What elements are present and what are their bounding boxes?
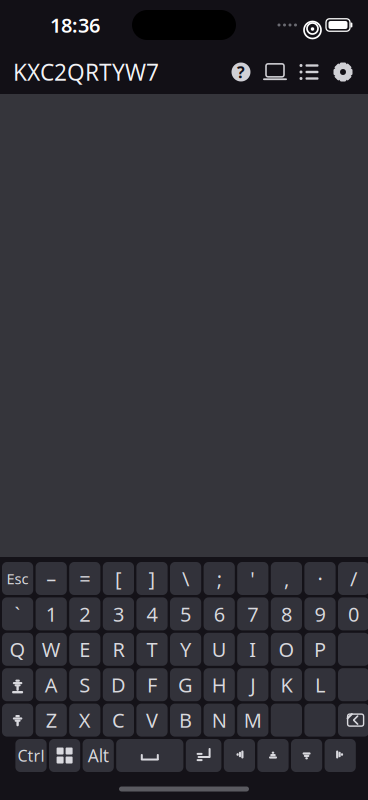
staticText: U bbox=[212, 636, 227, 663]
staticText: 2 bbox=[79, 601, 90, 627]
staticText: 18:36 bbox=[50, 12, 100, 38]
button[interactable]: T bbox=[136, 633, 168, 666]
button[interactable]: Esc bbox=[2, 562, 33, 595]
staticText: F bbox=[147, 671, 157, 698]
button[interactable]: Enter bbox=[186, 739, 221, 772]
staticText: O bbox=[278, 636, 294, 663]
button[interactable]: O bbox=[271, 633, 302, 666]
button[interactable]: N bbox=[204, 704, 235, 737]
staticText: ` bbox=[15, 601, 21, 627]
button[interactable]: Right bbox=[325, 739, 356, 772]
staticText: ] bbox=[148, 565, 155, 592]
button[interactable]: X bbox=[69, 704, 100, 737]
button[interactable]: Z bbox=[36, 704, 67, 737]
button[interactable]: F bbox=[136, 668, 168, 701]
button[interactable]: Shift bbox=[2, 704, 33, 737]
staticText: Q bbox=[10, 636, 26, 663]
button[interactable]: ] bbox=[136, 562, 168, 595]
button[interactable] bbox=[338, 668, 368, 701]
button[interactable]: List bbox=[292, 55, 326, 89]
button[interactable]: Settings bbox=[326, 55, 360, 89]
button[interactable]: H bbox=[204, 668, 235, 701]
button[interactable]: \ bbox=[170, 562, 201, 595]
button[interactable]: · bbox=[304, 562, 336, 595]
button[interactable]: E bbox=[69, 633, 100, 666]
staticText: / bbox=[350, 565, 357, 592]
button[interactable]: 4 bbox=[136, 597, 168, 630]
button[interactable]: Space bbox=[116, 739, 183, 772]
button[interactable]: M bbox=[237, 704, 268, 737]
staticText: I bbox=[249, 636, 256, 663]
button[interactable]: Left bbox=[224, 739, 255, 772]
button[interactable]: K bbox=[271, 668, 302, 701]
staticText: 5 bbox=[180, 601, 191, 627]
staticText: J bbox=[250, 671, 255, 698]
staticText: L bbox=[315, 671, 325, 698]
button[interactable] bbox=[338, 633, 368, 666]
button[interactable]: Ctrl bbox=[15, 739, 47, 772]
button[interactable]: 7 bbox=[237, 597, 268, 630]
button[interactable]: Alt bbox=[83, 739, 114, 772]
staticText: X bbox=[79, 707, 91, 733]
staticText: – bbox=[46, 565, 56, 592]
staticText: = bbox=[79, 565, 90, 592]
button[interactable]: 6 bbox=[204, 597, 235, 630]
button[interactable]: P bbox=[304, 633, 336, 666]
button[interactable]: 2 bbox=[69, 597, 100, 630]
button[interactable]: Windows bbox=[49, 739, 80, 772]
button[interactable]: 5 bbox=[170, 597, 201, 630]
button[interactable]: U bbox=[204, 633, 235, 666]
staticText: M bbox=[244, 707, 262, 733]
button[interactable]: ' bbox=[237, 562, 268, 595]
button[interactable]: 3 bbox=[103, 597, 134, 630]
staticText: R bbox=[112, 636, 124, 663]
staticText: P bbox=[314, 636, 326, 663]
staticText: Ctrl bbox=[17, 745, 44, 766]
button[interactable] bbox=[304, 704, 336, 737]
button[interactable]: 9 bbox=[304, 597, 336, 630]
button[interactable]: L bbox=[304, 668, 336, 701]
button[interactable]: Y bbox=[170, 633, 201, 666]
button[interactable]: G bbox=[170, 668, 201, 701]
button[interactable]: = bbox=[69, 562, 100, 595]
staticText: · bbox=[317, 565, 322, 592]
button[interactable]: S bbox=[69, 668, 100, 701]
staticText: B bbox=[179, 707, 192, 733]
button[interactable]: Backspace bbox=[338, 704, 368, 737]
button[interactable]: I bbox=[237, 633, 268, 666]
button[interactable]: [ bbox=[103, 562, 134, 595]
staticText: T bbox=[146, 636, 157, 663]
staticText: ; bbox=[217, 565, 222, 592]
button[interactable]: Display bbox=[258, 55, 292, 89]
button[interactable]: B bbox=[170, 704, 201, 737]
staticText: C bbox=[112, 707, 125, 733]
button[interactable]: A bbox=[36, 668, 67, 701]
staticText: 1 bbox=[46, 601, 57, 627]
button[interactable]: Up bbox=[257, 739, 289, 772]
button[interactable]: 0 bbox=[338, 597, 368, 630]
button[interactable]: W bbox=[36, 633, 67, 666]
button[interactable]: Help bbox=[224, 55, 258, 89]
button[interactable]: Down bbox=[291, 739, 322, 772]
button[interactable]: C bbox=[103, 704, 134, 737]
button[interactable]: D bbox=[103, 668, 134, 701]
staticText: W bbox=[42, 636, 61, 663]
staticText: KXC2QRTYW7 bbox=[13, 57, 159, 87]
button[interactable]: / bbox=[338, 562, 368, 595]
button[interactable]: Q bbox=[2, 633, 33, 666]
button[interactable]: ` bbox=[2, 597, 33, 630]
button[interactable]: V bbox=[136, 704, 168, 737]
button[interactable]: R bbox=[103, 633, 134, 666]
button[interactable]: 8 bbox=[271, 597, 302, 630]
button[interactable] bbox=[271, 704, 302, 737]
staticText: 0 bbox=[348, 601, 359, 627]
button[interactable]: ; bbox=[204, 562, 235, 595]
button[interactable]: , bbox=[271, 562, 302, 595]
staticText: Z bbox=[46, 707, 57, 733]
staticText: E bbox=[79, 636, 90, 663]
button[interactable]: Caps Lock bbox=[2, 668, 33, 701]
button[interactable]: 1 bbox=[36, 597, 67, 630]
button[interactable]: J bbox=[237, 668, 268, 701]
staticText: 6 bbox=[214, 601, 225, 627]
button[interactable]: – bbox=[36, 562, 67, 595]
